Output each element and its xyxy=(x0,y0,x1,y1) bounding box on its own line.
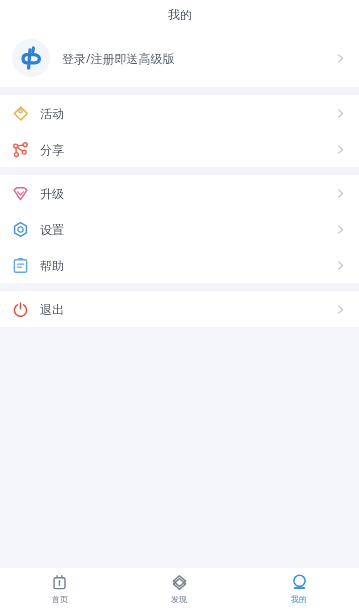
button[interactable]: 登录/注册即送高级版 xyxy=(0,29,359,87)
staticText: 我的 xyxy=(291,594,307,604)
button[interactable]: 帮助 xyxy=(0,247,359,283)
button[interactable]: 退出 xyxy=(0,291,359,327)
button[interactable]: 设置 xyxy=(0,211,359,247)
button[interactable]: 升级 xyxy=(0,175,359,211)
button[interactable]: 发现 xyxy=(119,568,239,610)
staticText: 退出 xyxy=(40,302,64,317)
staticText: 首页 xyxy=(52,594,68,604)
staticText: 升级 xyxy=(40,186,64,201)
staticText: 我的 xyxy=(168,7,192,22)
button[interactable]: 分享 xyxy=(0,131,359,167)
staticText: 帮助 xyxy=(40,258,64,273)
button[interactable]: 活动 xyxy=(0,95,359,131)
button[interactable]: 首页 xyxy=(0,568,119,610)
staticText: 分享 xyxy=(40,142,64,157)
staticText: 登录/注册即送高级版 xyxy=(62,50,175,66)
staticText: 活动 xyxy=(40,106,64,121)
staticText: 设置 xyxy=(40,222,64,237)
button[interactable]: 我的 xyxy=(239,568,359,610)
staticText: 发现 xyxy=(171,594,187,604)
